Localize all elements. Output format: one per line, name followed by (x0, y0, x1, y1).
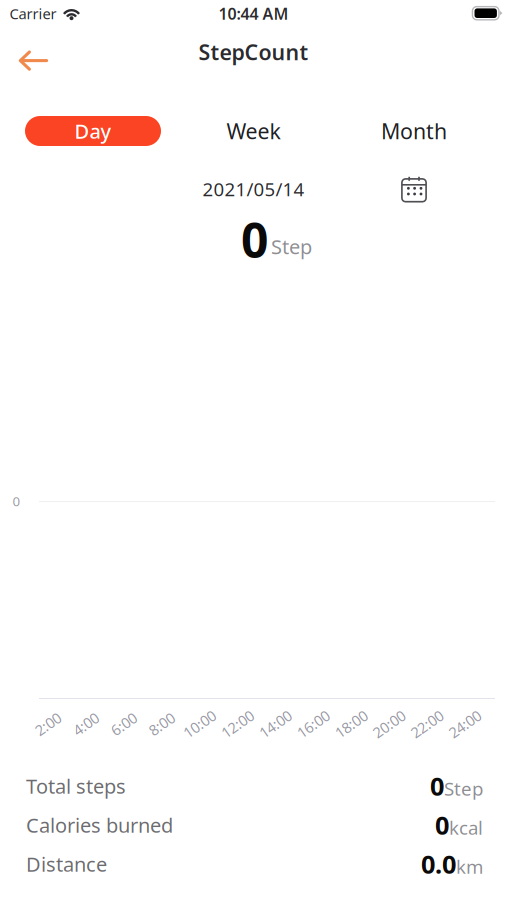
staticText: 24:00 (447, 714, 483, 734)
staticText: 2021/05/14 (202, 177, 304, 201)
staticText: 10:44 AM (218, 3, 288, 24)
staticText: 0 (435, 808, 449, 842)
staticText: 2:00 (34, 714, 62, 734)
staticText: Carrier (9, 4, 56, 23)
staticText: 14:00 (257, 714, 293, 734)
staticText: 0 (430, 769, 444, 803)
staticText: 4:00 (72, 714, 100, 734)
staticText: kcal (449, 815, 483, 840)
staticText: 18:00 (333, 714, 369, 734)
staticText: 0 (12, 492, 20, 510)
staticText: 20:00 (371, 714, 407, 734)
staticText: 0 (241, 208, 268, 271)
button[interactable]: Choose date (392, 168, 436, 210)
button[interactable]: Day (25, 116, 161, 146)
button[interactable]: Back (4, 38, 62, 82)
staticText: Step (271, 233, 312, 260)
staticText: Calories burned (26, 812, 173, 838)
staticText: 0.0 (421, 847, 456, 881)
staticText: Day (74, 118, 111, 144)
staticText: 10:00 (182, 714, 218, 734)
button[interactable]: Month (359, 113, 469, 149)
staticText: 22:00 (409, 714, 445, 734)
staticText: km (456, 854, 483, 879)
staticText: 8:00 (148, 714, 176, 734)
staticText: Month (381, 117, 447, 145)
staticText: StepCount (198, 38, 308, 66)
staticText: 16:00 (295, 714, 331, 734)
staticText: 6:00 (110, 714, 138, 734)
staticText: Total steps (26, 773, 126, 799)
button[interactable]: Week (198, 113, 308, 149)
staticText: Distance (26, 851, 107, 877)
staticText: Week (226, 117, 280, 145)
staticText: Step (444, 776, 483, 801)
staticText: 12:00 (219, 714, 255, 734)
